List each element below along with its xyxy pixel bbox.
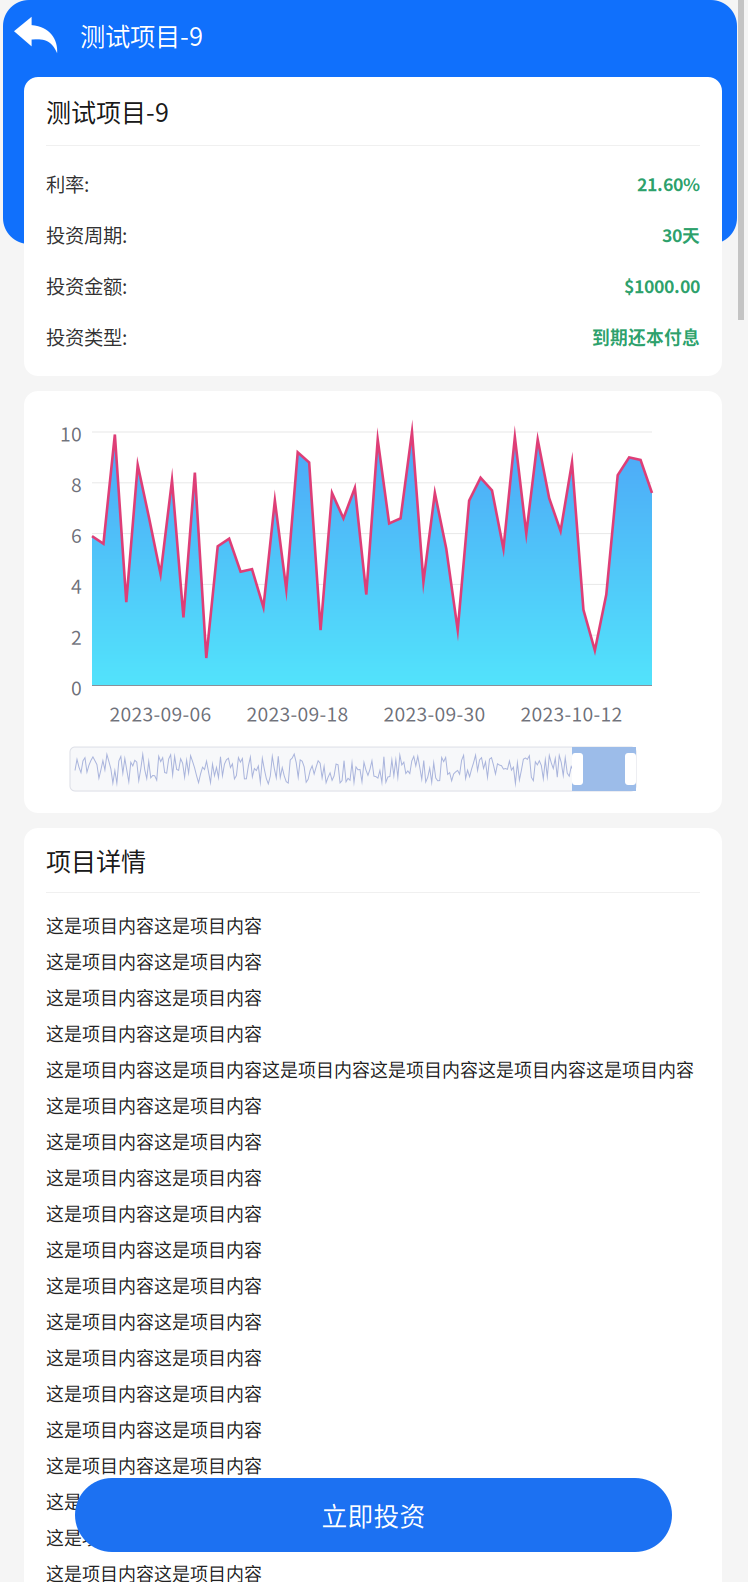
staticText: 测试项目-9 <box>46 93 169 129</box>
staticText: 这是项目内容这是项目内容 <box>46 948 262 974</box>
staticText: 8 <box>71 470 82 498</box>
staticText: 这是项目内容这是项目内容 <box>46 1308 262 1334</box>
staticText: 投资类型: <box>46 322 127 350</box>
staticText: 测试项目-9 <box>80 17 203 53</box>
staticText: 这是项目内容这是项目内容 <box>46 1416 262 1442</box>
staticText: 这是项目内容这是项目内容 <box>46 912 262 938</box>
staticText: 这是项目内容这是项目内容 <box>46 1236 262 1262</box>
staticText: 21.60% <box>637 171 700 196</box>
staticText: 这是项目内容这是项目内容 <box>46 1452 262 1478</box>
staticText: 这是项目内容这是项目内容 <box>46 1020 262 1046</box>
staticText: 2 <box>71 622 82 650</box>
button[interactable]: 立即投资 <box>75 1478 672 1552</box>
staticText: 投资金额: <box>46 271 127 299</box>
staticText: 0 <box>71 673 82 701</box>
staticText: 项目详情 <box>46 842 146 878</box>
staticText: 这是项目内容这是项目内容 <box>46 1272 262 1298</box>
staticText: 10 <box>60 419 82 447</box>
staticText: 这是项目内容这是项目内容 <box>46 984 262 1010</box>
staticText: 这是项目内容这是项目内容 <box>46 1488 262 1514</box>
staticText: 这是项目内容这是项目内容 <box>46 1128 262 1154</box>
staticText: 30天 <box>662 222 700 247</box>
staticText: 这是项目内容这是项目内容 <box>46 1092 262 1118</box>
staticText: 这是项目内容这是项目内容 <box>46 1380 262 1406</box>
staticText: 4 <box>71 571 82 599</box>
staticText: 利率: <box>46 169 89 197</box>
staticText: 这是项目内容这是项目内容 <box>46 1344 262 1370</box>
staticText: 这是项目内容这是项目内容 <box>46 1524 262 1550</box>
staticText: 2023-09-06 <box>109 699 211 727</box>
staticText: 投资周期: <box>46 220 127 248</box>
staticText: 2023-09-30 <box>383 699 485 727</box>
staticText: 6 <box>71 521 82 549</box>
staticText: 这是项目内容这是项目内容 <box>46 1200 262 1226</box>
staticText: $1000.00 <box>624 273 700 298</box>
staticText: 立即投资 <box>321 1496 425 1534</box>
staticText: 2023-10-12 <box>520 699 622 727</box>
staticText: 这是项目内容这是项目内容这是项目内容这是项目内容这是项目内容这是项目内容 <box>46 1056 694 1082</box>
staticText: 到期还本付息 <box>592 324 700 349</box>
staticText: 这是项目内容这是项目内容 <box>46 1560 262 1582</box>
staticText: 2023-09-18 <box>246 699 348 727</box>
button[interactable]: 返回 <box>0 0 80 70</box>
staticText: 这是项目内容这是项目内容 <box>46 1164 262 1190</box>
